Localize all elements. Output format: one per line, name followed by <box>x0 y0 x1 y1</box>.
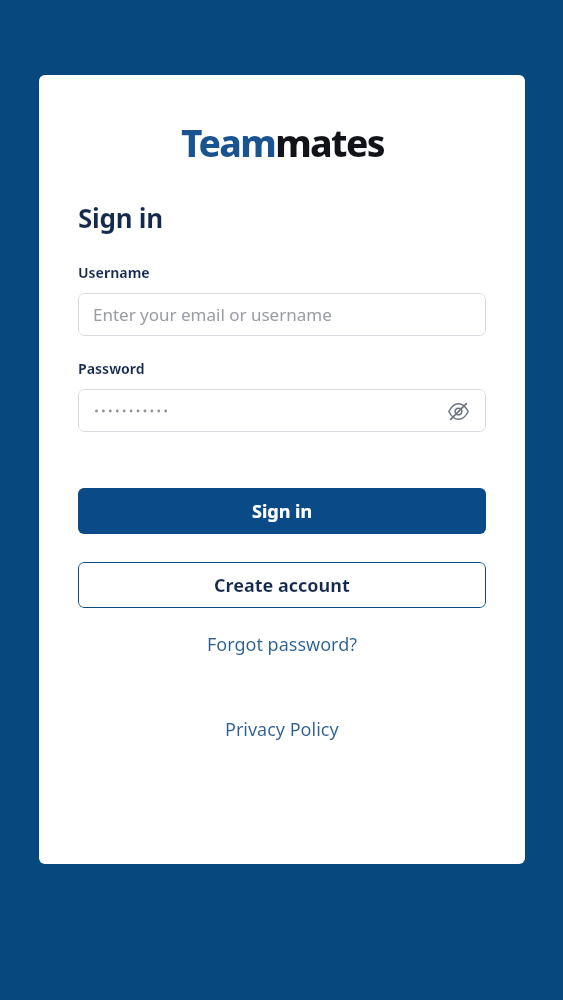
button[interactable]: Show password <box>78 389 486 432</box>
button[interactable]: Show password <box>443 396 473 426</box>
button[interactable]: Forgot password? <box>78 626 486 662</box>
staticText: Sign in <box>78 200 163 235</box>
staticText: Password <box>78 359 145 378</box>
staticText: Forgot password? <box>207 632 358 657</box>
staticText: Teammates <box>181 117 384 167</box>
button[interactable]: Create account <box>78 562 486 608</box>
staticText: Enter your email or username <box>93 303 332 326</box>
staticText: Privacy Policy <box>225 717 339 742</box>
button[interactable]: Sign in <box>78 488 486 534</box>
button[interactable]: Privacy Policy <box>78 711 486 747</box>
button[interactable]: Enter your email or username <box>78 293 486 336</box>
staticText: Create account <box>214 573 350 598</box>
staticText: Sign in <box>252 499 313 524</box>
staticText: Username <box>78 263 150 282</box>
